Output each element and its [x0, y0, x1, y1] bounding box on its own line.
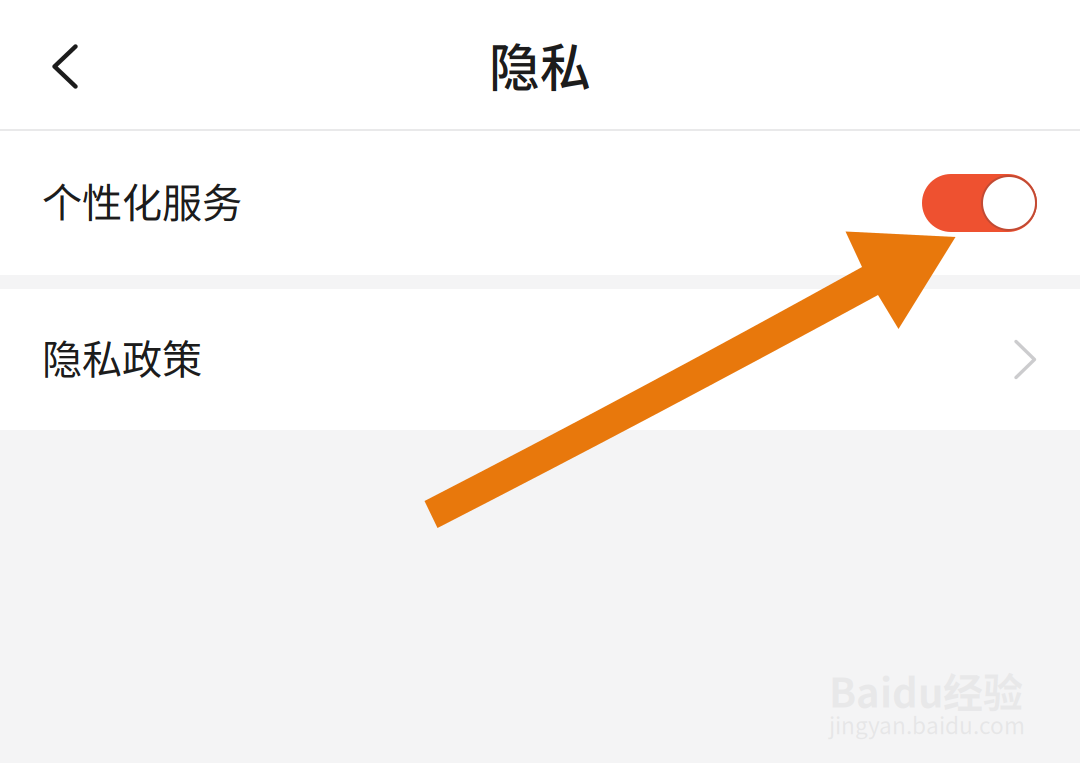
button[interactable]: 隐私政策 [0, 289, 1080, 430]
staticText: 个性化服务 [42, 171, 242, 229]
staticText: Baidu经验 [829, 661, 1023, 719]
staticText: 隐私 [489, 28, 591, 101]
button[interactable]: 个性化服务开关，已开启 [922, 174, 1037, 232]
button[interactable]: 个性化服务 [0, 131, 1080, 275]
button[interactable]: 返回 [0, 0, 120, 129]
staticText: jingyan.baidu.com [829, 708, 1025, 741]
staticText: 隐私政策 [42, 327, 202, 385]
